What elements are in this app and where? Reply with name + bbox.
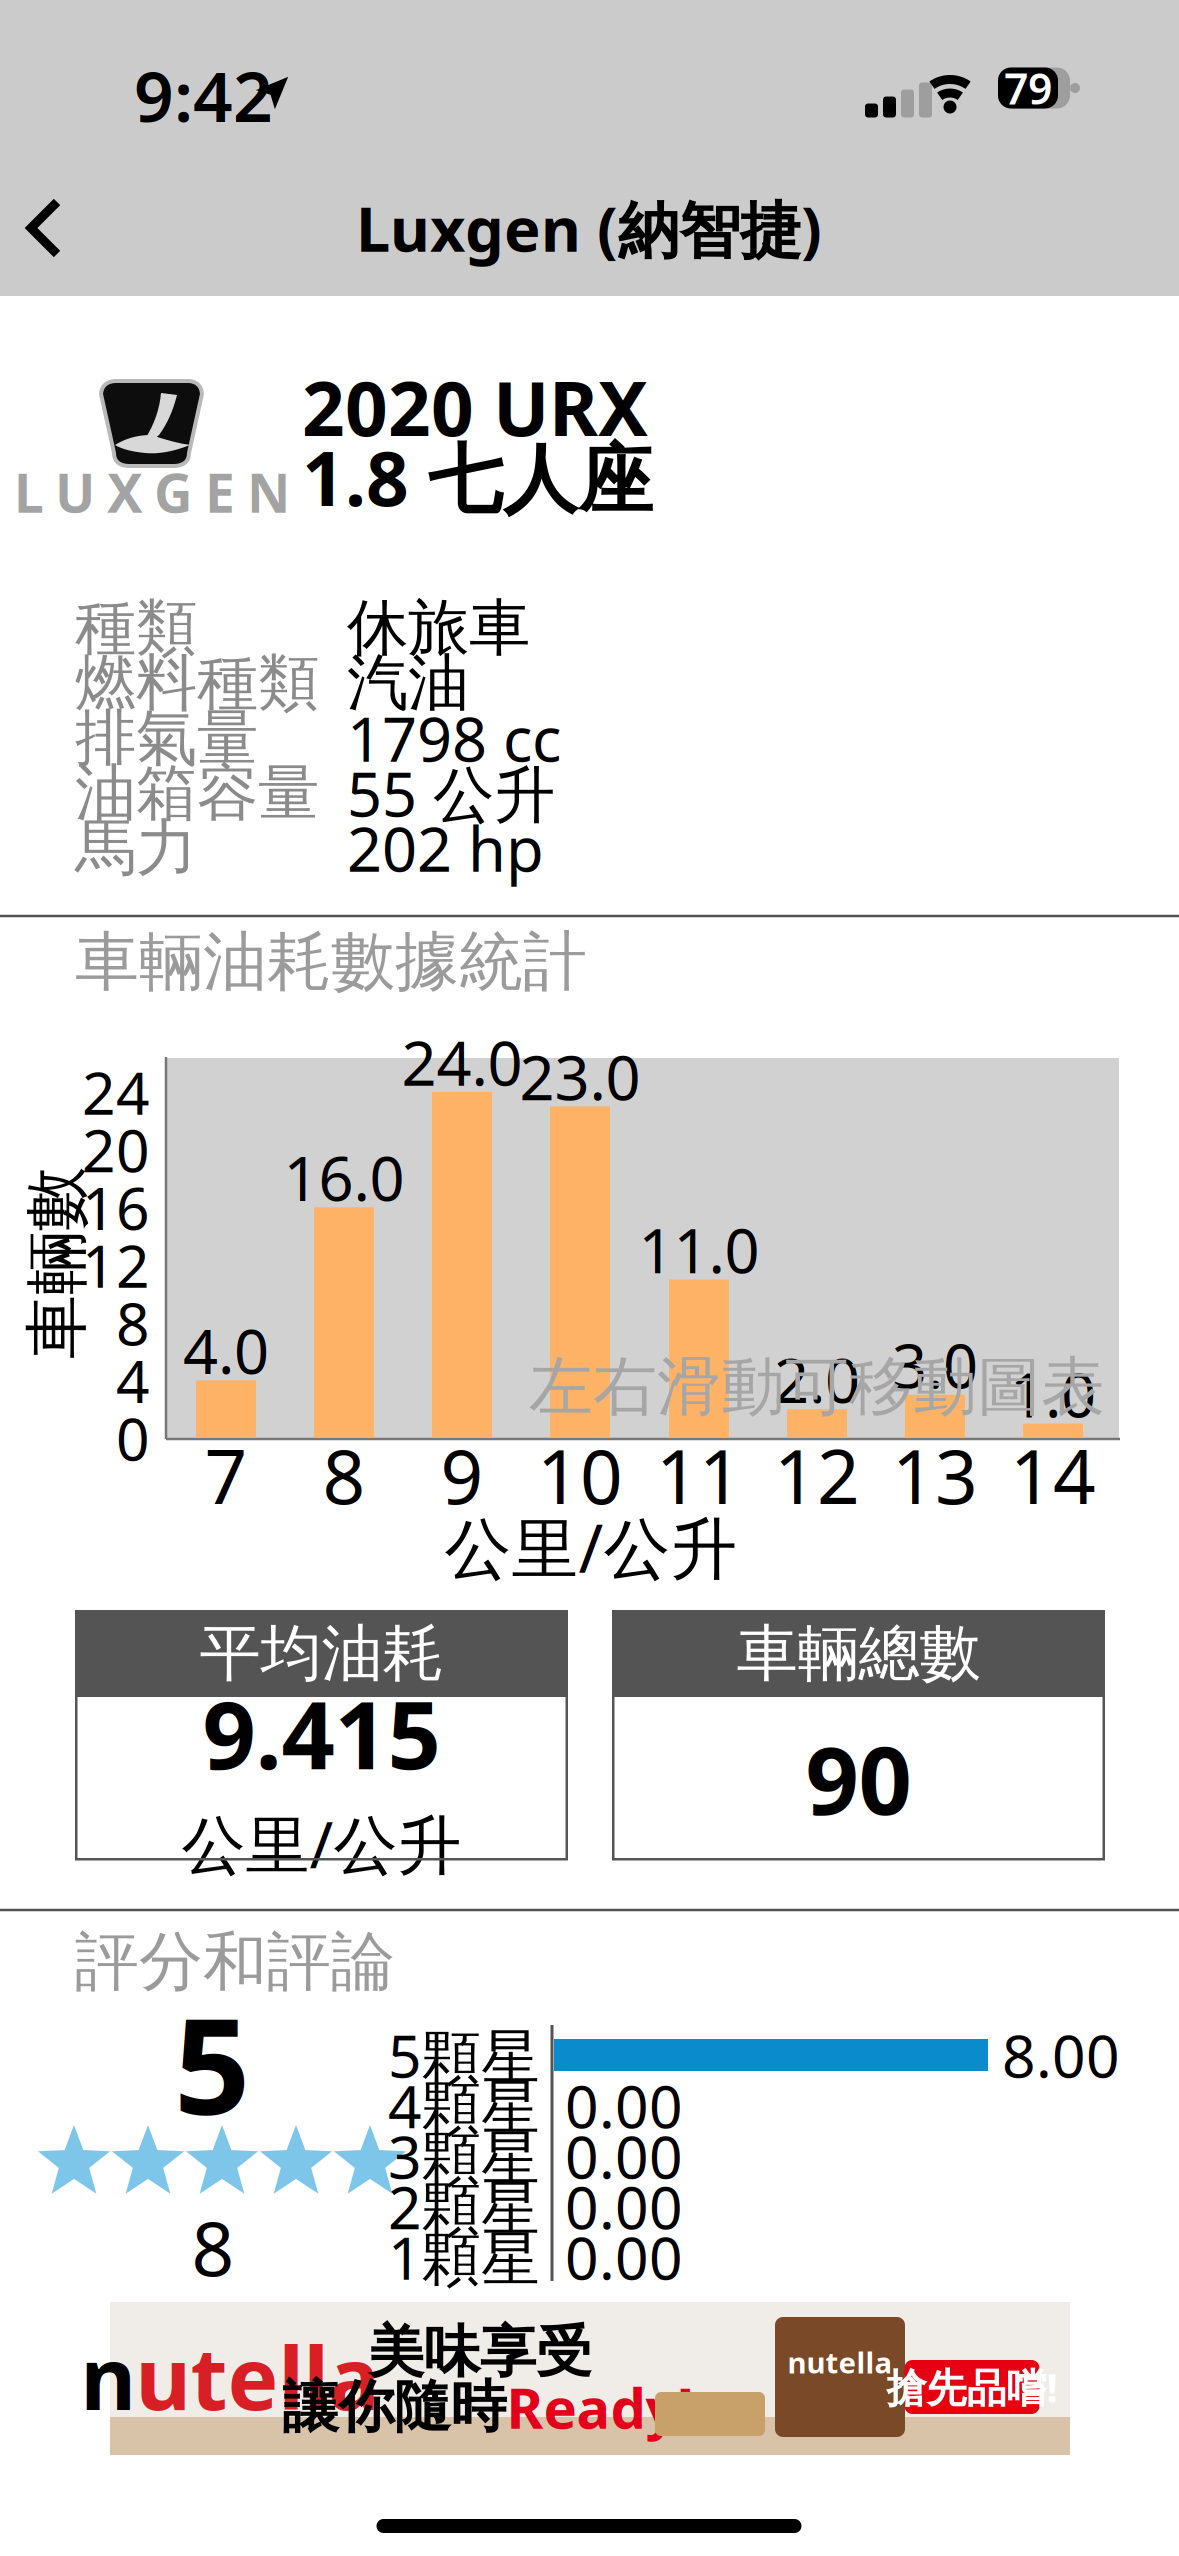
staticText: 讓你隨時 (282, 2373, 506, 2441)
staticText: 1顆星 (388, 2218, 540, 2296)
staticText: 202 hp (347, 807, 544, 889)
staticText: 4.0 (183, 1310, 269, 1391)
staticText: 馬力 (75, 810, 197, 886)
staticText: 2.0 (774, 1338, 860, 1420)
staticText: LUXGEN (14, 457, 290, 527)
staticText: 24 (82, 1053, 150, 1131)
staticText: 9.415 (202, 1671, 440, 1795)
staticText: Ready! (506, 2370, 693, 2444)
staticText: 0.00 (565, 2117, 683, 2195)
staticText: n (80, 2320, 135, 2434)
staticText: 油箱容量 (75, 755, 319, 831)
staticText: 8 (191, 2197, 234, 2297)
staticText: 2顆星 (388, 2167, 540, 2245)
staticText: 公里/公升 (444, 1503, 737, 1591)
staticText: 12 (82, 1226, 150, 1304)
staticText: 0 (116, 1399, 150, 1477)
staticText: 種類 (75, 590, 197, 666)
staticText: 11.0 (638, 1209, 759, 1290)
staticText: 7 (204, 1425, 247, 1525)
staticText: 公里/公升 (181, 1801, 461, 1886)
staticText: utella (135, 2320, 379, 2434)
staticText: 4 (116, 1341, 150, 1419)
staticText: 車輛數 (0, 1224, 153, 1302)
staticText: 燃料種類 (75, 645, 319, 721)
staticText: 14 (1010, 1425, 1096, 1525)
staticText: 5顆星 (388, 2016, 540, 2094)
staticText: 車輛油耗數據統計 (75, 923, 587, 1001)
staticText: 評分和評論 (75, 1923, 395, 2001)
staticText: 3.0 (892, 1324, 978, 1405)
staticText: 美味享受 (368, 2318, 592, 2386)
staticText: 9 (440, 1425, 483, 1525)
staticText: 16.0 (283, 1137, 404, 1218)
staticText: Luxgen (納智捷) (356, 187, 822, 269)
staticText: 搶先品嚐! (886, 2360, 1057, 2413)
staticText: 1.8 七人座 (302, 427, 653, 527)
staticText: 0.00 (565, 2218, 683, 2296)
staticText: 0.00 (565, 2167, 683, 2245)
staticText: 20 (82, 1111, 150, 1188)
staticText: 休旅車 (347, 590, 530, 666)
staticText: 0.00 (565, 2066, 683, 2144)
staticText: 3顆星 (388, 2117, 540, 2195)
staticText: 5 (174, 1974, 250, 2152)
staticText: 16 (82, 1168, 150, 1246)
staticText: 12 (774, 1425, 860, 1525)
staticText: 4顆星 (388, 2066, 540, 2144)
staticText: 11 (656, 1425, 742, 1525)
staticText: 55 公升 (347, 752, 555, 834)
staticText: nutella (787, 2342, 892, 2381)
button[interactable]: Nutella advertisement (110, 2302, 1070, 2455)
staticText: 車輛總數 (736, 1616, 980, 1691)
staticText: 24.0 (401, 1021, 522, 1103)
staticText: 8.00 (1002, 2016, 1120, 2094)
staticText: 2020 URX (302, 357, 648, 457)
staticText: 汽油 (347, 645, 469, 721)
staticText: 8 (116, 1284, 150, 1362)
staticText: 79 (1004, 60, 1052, 116)
staticText: 9:42 (134, 49, 273, 141)
staticText: 8 (322, 1425, 365, 1525)
staticText: 1.0 (1010, 1353, 1096, 1434)
staticText: 平均油耗 (199, 1616, 443, 1691)
staticText: 排氣量 (75, 700, 258, 776)
staticText: 90 (805, 1716, 911, 1840)
staticText: 23.0 (519, 1036, 640, 1117)
button[interactable]: Back (13, 190, 75, 266)
staticText: 10 (537, 1425, 623, 1525)
staticText: 1798 cc (347, 697, 561, 779)
staticText: 左右滑動可移動圖表 (529, 1348, 1105, 1426)
staticText: 13 (892, 1425, 978, 1525)
